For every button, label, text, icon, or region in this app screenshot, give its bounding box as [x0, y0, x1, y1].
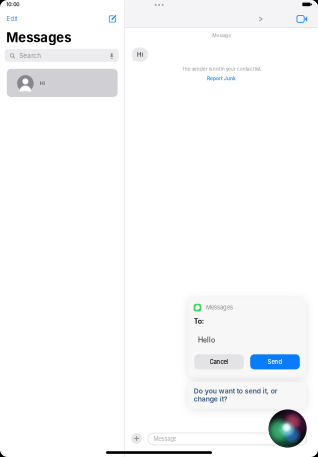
staticText: iMessage: [211, 33, 231, 38]
staticText: Send: [267, 358, 282, 365]
button[interactable]: Send: [188, 297, 306, 377]
staticText: Hi: [137, 51, 143, 58]
button[interactable]: Cancel: [188, 297, 306, 377]
button[interactable]: Add attachment: [0, 0, 318, 457]
staticText: Do you want to send it, or change it?: [194, 387, 278, 403]
staticText: To:: [194, 317, 204, 325]
staticText: The sender is not in your contact list.: [182, 66, 261, 72]
staticText: Message: [153, 435, 176, 442]
staticText: Hi: [40, 80, 45, 86]
button[interactable]: Conversation details: [0, 0, 318, 457]
button[interactable]: Report Junk: [0, 0, 318, 457]
button[interactable]: FaceTime: [0, 0, 318, 457]
button[interactable]: New Message: [0, 0, 318, 457]
staticText: 10:00: [6, 1, 19, 8]
staticText: Hello: [198, 336, 215, 344]
staticText: Report Junk: [207, 76, 236, 81]
staticText: Edit: [6, 15, 17, 23]
staticText: Messages: [6, 30, 71, 45]
staticText: Cancel: [209, 358, 228, 365]
button[interactable]: Hi: [0, 0, 318, 457]
staticText: Search: [19, 52, 41, 59]
button[interactable]: Edit: [0, 0, 318, 457]
staticText: Messages: [206, 304, 233, 311]
